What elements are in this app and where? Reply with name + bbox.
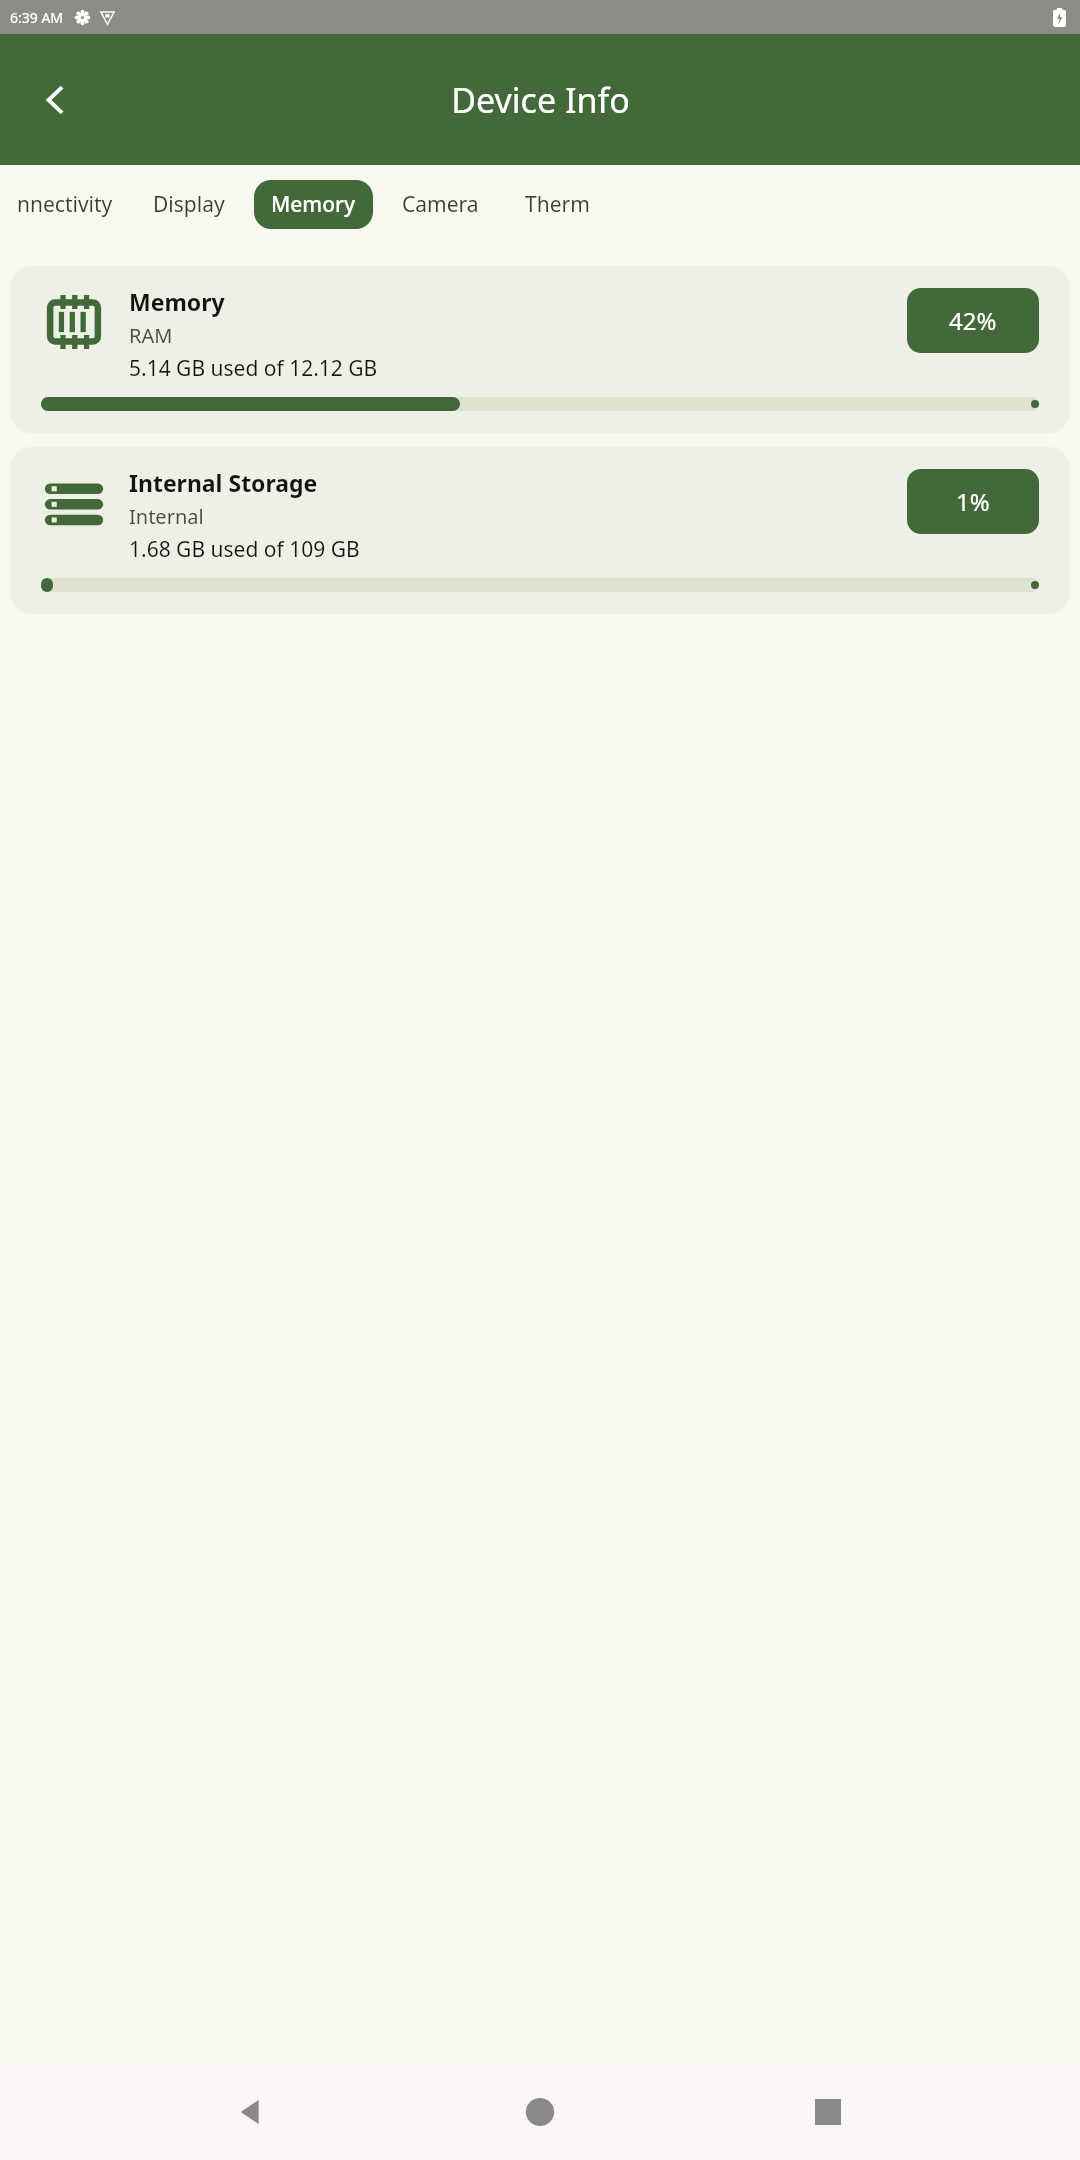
staticText: Camera: [402, 190, 479, 219]
staticText: Internal: [129, 503, 204, 530]
button[interactable]: Memory: [11, 266, 1069, 433]
staticText: Therm: [525, 190, 590, 219]
button[interactable]: Recents: [792, 2076, 864, 2148]
staticText: Internal Storage: [129, 467, 318, 498]
button[interactable]: Back: [216, 2076, 288, 2148]
staticText: RAM: [129, 322, 173, 349]
button[interactable]: nnectivity: [0, 180, 130, 229]
staticText: 1%: [956, 485, 990, 518]
staticText: Memory: [271, 190, 356, 219]
button[interactable]: Display: [136, 180, 242, 229]
button[interactable]: Therm: [508, 180, 607, 229]
staticText: 1.68 GB used of 109 GB: [129, 535, 360, 564]
button[interactable]: Camera: [385, 180, 496, 229]
staticText: 42%: [949, 304, 997, 337]
staticText: Memory: [129, 286, 225, 317]
staticText: 6:39 AM: [10, 8, 64, 27]
button[interactable]: Home: [504, 2076, 576, 2148]
button[interactable]: Memory: [254, 180, 373, 229]
staticText: Display: [153, 190, 225, 219]
staticText: Device Info: [451, 77, 630, 123]
staticText: nnectivity: [17, 190, 113, 219]
button[interactable]: Internal Storage: [11, 447, 1069, 614]
staticText: 5.14 GB used of 12.12 GB: [129, 354, 378, 383]
button[interactable]: Back: [28, 72, 84, 128]
